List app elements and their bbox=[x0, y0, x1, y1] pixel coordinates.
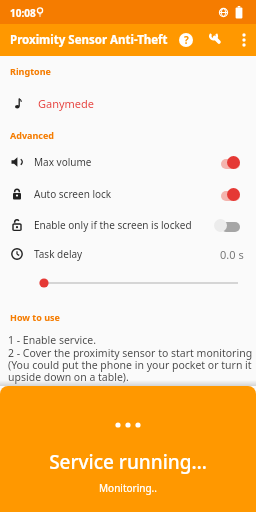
button[interactable]: Auto screen lock bbox=[0, 179, 256, 209]
staticText: Ringtone bbox=[10, 65, 51, 77]
button[interactable]: Task delay bbox=[0, 239, 256, 269]
staticText: How to use bbox=[10, 311, 60, 323]
button[interactable] bbox=[204, 28, 224, 48]
staticText: Advanced bbox=[10, 129, 55, 141]
staticText: Ganymede bbox=[38, 96, 95, 111]
staticText: Max volume bbox=[34, 155, 92, 169]
button[interactable]: Ganymede bbox=[0, 88, 256, 118]
staticText: 0.0 s bbox=[220, 247, 244, 262]
staticText: Task delay bbox=[34, 247, 83, 261]
staticText: Auto screen lock bbox=[34, 187, 112, 201]
staticText: Monitoring.. bbox=[0, 481, 256, 495]
staticText: 10:08 bbox=[10, 6, 36, 20]
staticText: 1 - Enable service. 2 - Cover the proxim… bbox=[8, 333, 253, 384]
staticText: ? bbox=[184, 33, 189, 47]
button[interactable]: Enable only if the screen is locked bbox=[0, 210, 256, 240]
button[interactable]: Max volume bbox=[0, 147, 256, 177]
staticText: Proximity Sensor Anti-Theft bbox=[10, 32, 168, 48]
button[interactable] bbox=[0, 414, 256, 436]
staticText: Service running… bbox=[0, 449, 256, 475]
button[interactable]: ? bbox=[178, 32, 194, 48]
button[interactable] bbox=[236, 28, 252, 52]
staticText: Enable only if the screen is locked bbox=[34, 218, 192, 232]
